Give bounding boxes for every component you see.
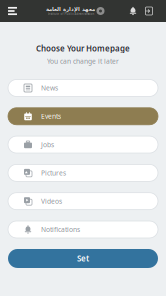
staticText: Choose Your Homepage: [36, 43, 130, 54]
staticText: Pictures: [41, 168, 66, 177]
button[interactable]: Pictures: [8, 164, 158, 181]
button[interactable]: Notifications: [126, 0, 140, 21]
staticText: Set: [77, 253, 89, 264]
button[interactable]: News: [8, 79, 158, 96]
button[interactable]: Menu: [0, 0, 24, 22]
button[interactable]: Sign out: [140, 0, 166, 22]
staticText: Jobs: [41, 140, 54, 149]
staticText: Events: [41, 112, 61, 121]
staticText: You can change it later: [47, 57, 119, 65]
button[interactable]: Set: [8, 249, 158, 268]
staticText: معهد الإدارة العامة: [45, 6, 94, 12]
button[interactable]: Jobs: [8, 136, 158, 153]
staticText: Videos: [41, 197, 62, 206]
staticText: News: [41, 84, 58, 92]
button[interactable]: Events: [8, 108, 158, 125]
button[interactable]: Notifications: [8, 221, 158, 238]
staticText: Institute of Public Administration: [47, 12, 94, 16]
button[interactable]: Videos: [8, 193, 158, 210]
staticText: Notifications: [41, 225, 80, 234]
